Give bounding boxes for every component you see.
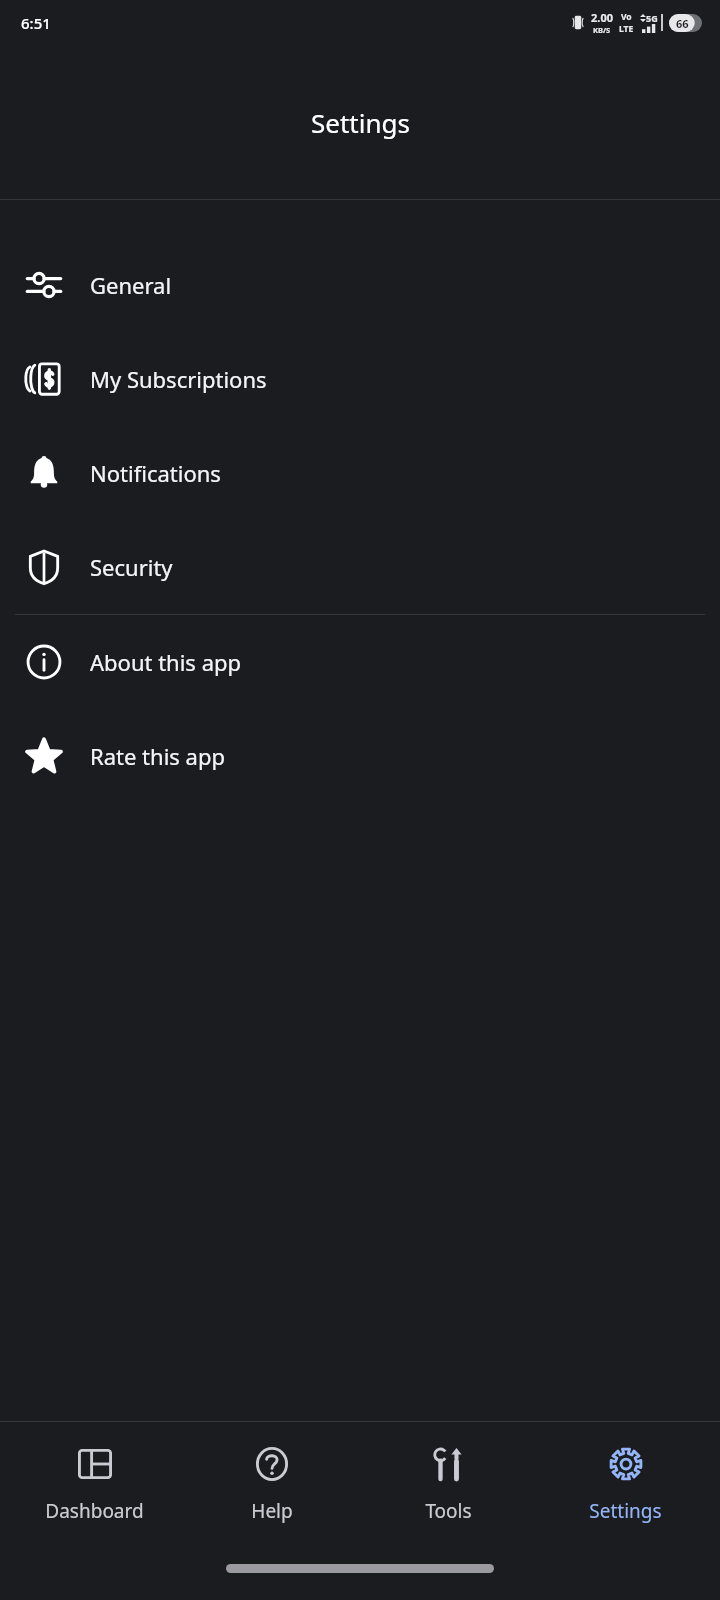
staticText: 6:51 bbox=[21, 13, 51, 33]
staticText: Settings bbox=[589, 1498, 662, 1524]
staticText: Dashboard bbox=[45, 1498, 144, 1524]
staticText: Rate this app bbox=[90, 741, 225, 771]
staticText: Notifications bbox=[90, 458, 221, 488]
button[interactable]: Dashboard bbox=[12, 1422, 177, 1564]
staticText: About this app bbox=[90, 647, 242, 677]
button[interactable]: Notifications bbox=[0, 426, 720, 520]
staticText: Help bbox=[251, 1498, 293, 1524]
button[interactable]: About this app bbox=[0, 615, 720, 709]
button[interactable]: General bbox=[0, 238, 720, 332]
staticText: Tools bbox=[425, 1498, 472, 1524]
staticText: General bbox=[90, 270, 172, 300]
staticText: KB/S bbox=[593, 25, 611, 35]
staticText: Security bbox=[90, 552, 173, 582]
staticText: Settings bbox=[311, 105, 410, 140]
other: Tools bbox=[432, 1447, 466, 1481]
button[interactable]: Tools bbox=[366, 1422, 531, 1564]
button[interactable]: Rate this app bbox=[0, 709, 720, 803]
other: Dashboard bbox=[78, 1447, 112, 1481]
staticText: LTE bbox=[619, 23, 634, 35]
staticText: 2.00 bbox=[591, 10, 613, 25]
staticText: Vo bbox=[621, 11, 632, 23]
button[interactable]: Security bbox=[0, 520, 720, 614]
staticText: 5G bbox=[646, 12, 658, 24]
other: Help bbox=[255, 1447, 289, 1481]
button[interactable]: Settings bbox=[543, 1422, 708, 1564]
staticText: 66 bbox=[676, 16, 689, 31]
staticText: My Subscriptions bbox=[90, 364, 267, 394]
button[interactable]: Help bbox=[189, 1422, 354, 1564]
button[interactable]: My Subscriptions bbox=[0, 332, 720, 426]
other: Settings bbox=[609, 1447, 643, 1481]
